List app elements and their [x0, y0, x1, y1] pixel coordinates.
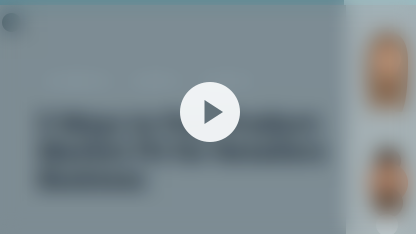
staticText: Business [38, 163, 145, 195]
button[interactable]: Play video [180, 82, 240, 142]
staticText: 5 Ways to Find Product- [38, 107, 324, 139]
staticText: ECOMMERCE · GROWTH · STRATEGY [40, 73, 257, 89]
staticText: Market Fit for Retailers [38, 135, 326, 167]
